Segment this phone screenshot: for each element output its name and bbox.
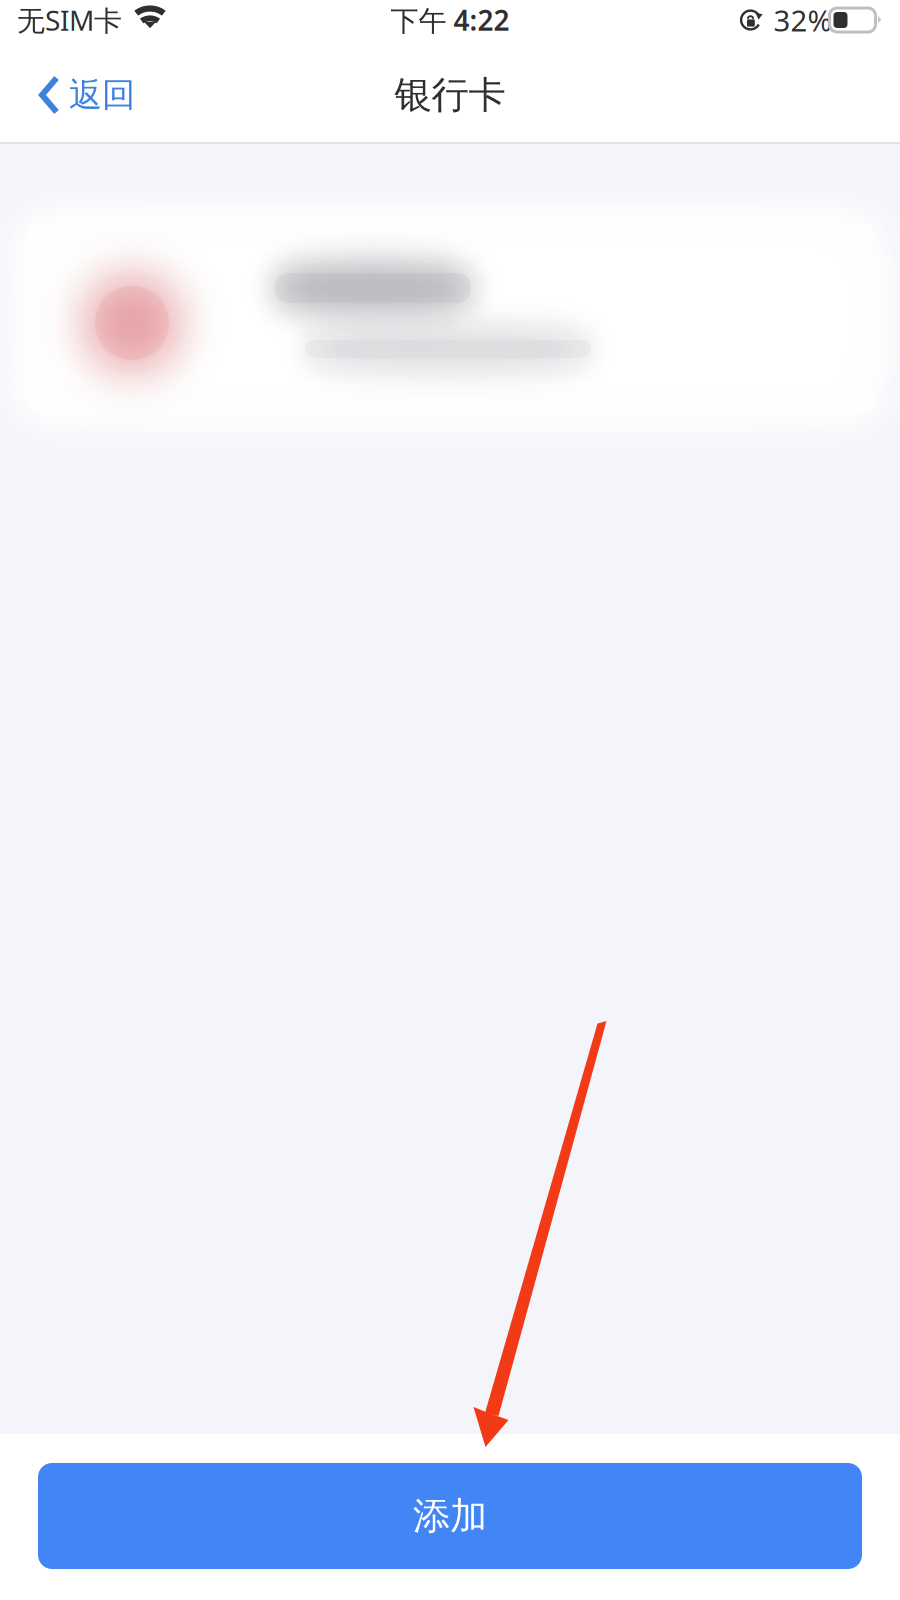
staticText: 下午 4:22 <box>390 1 509 39</box>
button[interactable]: 添加 <box>38 1463 862 1569</box>
staticText: 银行卡 <box>394 72 505 118</box>
button[interactable] <box>0 206 900 430</box>
staticText: 无SIM卡 <box>17 1 122 39</box>
staticText: 添加 <box>413 1493 487 1539</box>
staticText: 返回 <box>69 74 135 115</box>
staticText: 32% <box>773 0 831 39</box>
button[interactable]: 返回 <box>0 48 157 142</box>
